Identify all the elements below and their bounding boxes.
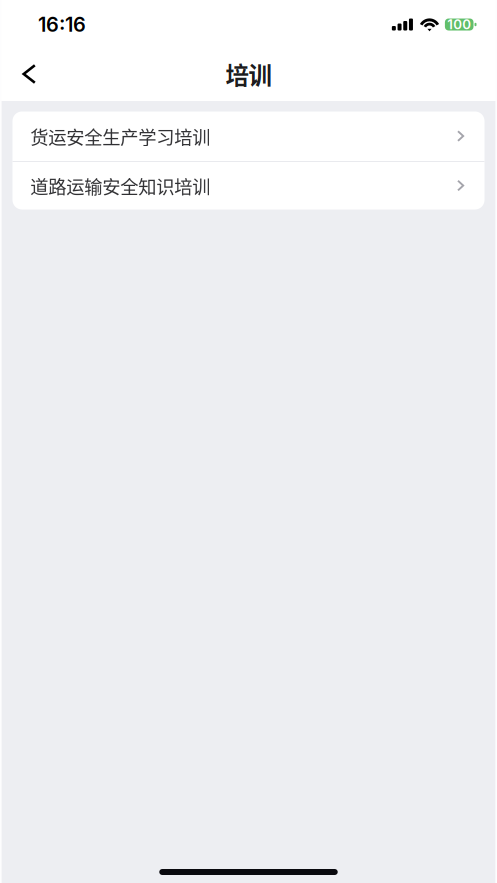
staticText: 货运安全生产学习培训 (30, 123, 210, 149)
button[interactable]: 货运安全生产学习培训 (12, 111, 484, 161)
staticText: 培训 (225, 57, 271, 91)
staticText: 道路运输安全知识培训 (30, 172, 210, 199)
staticText: 16:16 (38, 12, 86, 37)
staticText: 100 (447, 16, 471, 32)
button[interactable]: Back (0, 49, 52, 99)
button[interactable]: 道路运输安全知识培训 (12, 162, 484, 209)
